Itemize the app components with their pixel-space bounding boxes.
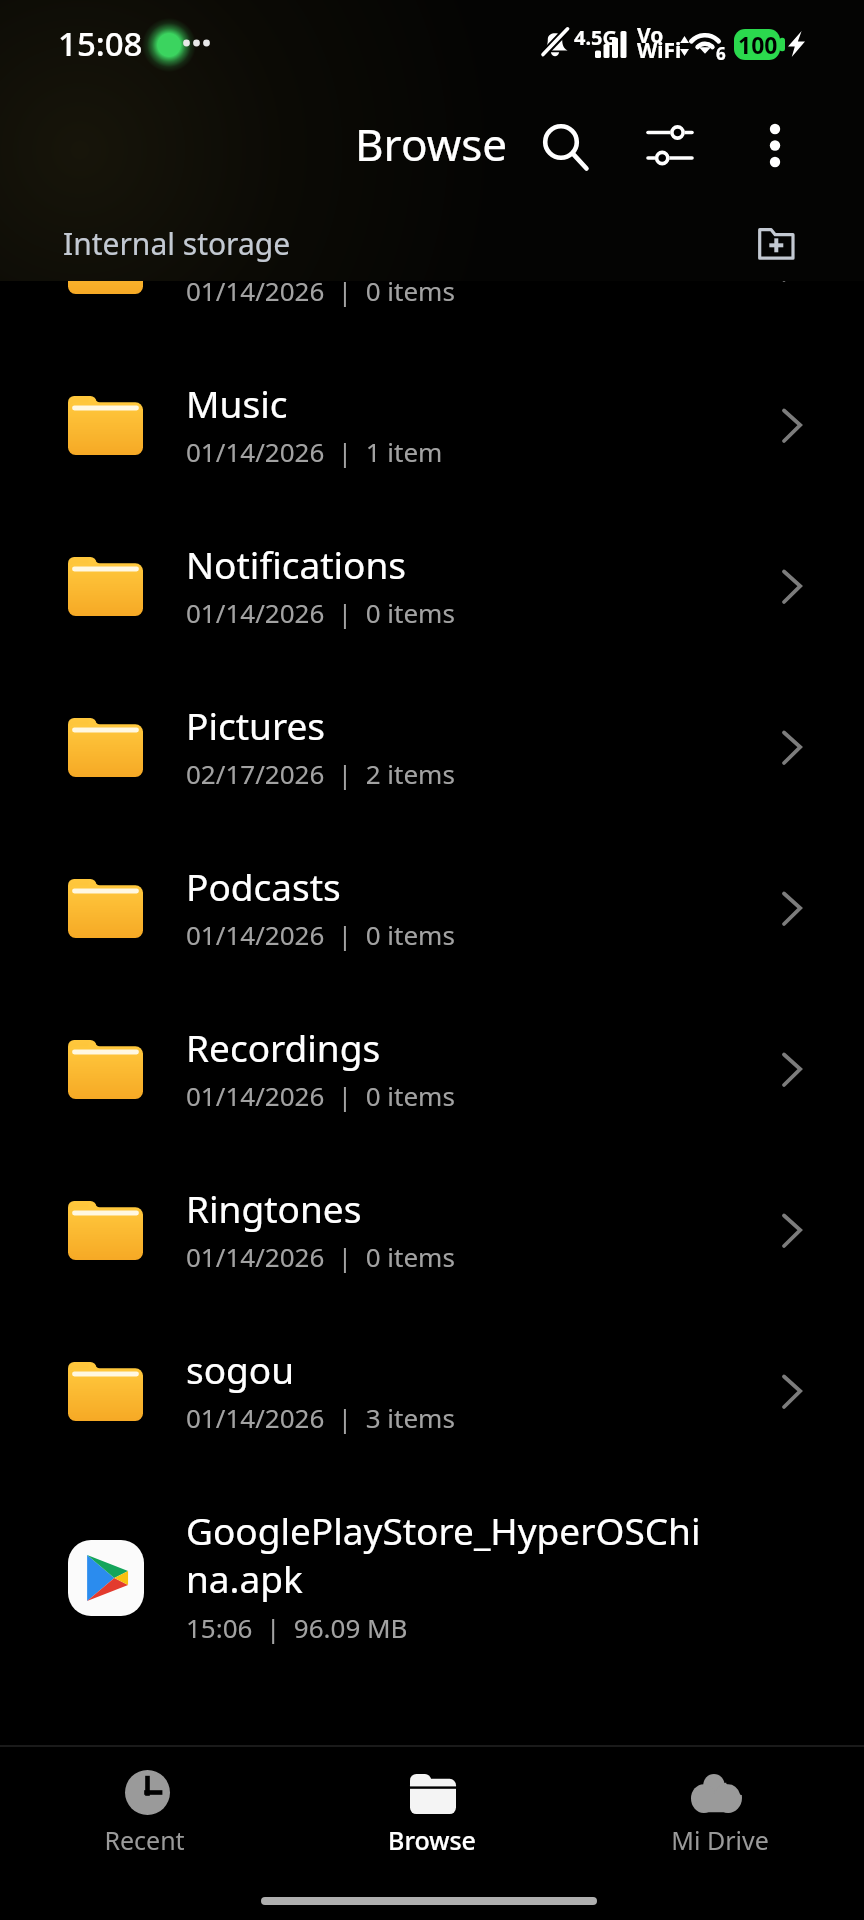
- button[interactable]: Podcasts: [0, 828, 864, 989]
- staticText: Browse: [355, 114, 508, 174]
- staticText: Podcasts: [186, 861, 341, 911]
- button[interactable]: Notifications: [0, 506, 864, 667]
- staticText: 01/14/2026 | 1 item: [186, 434, 443, 469]
- button[interactable]: Mi Drive: [576, 1747, 864, 1871]
- staticText: 01/14/2026 | 0 items: [186, 595, 455, 630]
- button[interactable]: sogou: [0, 1311, 864, 1472]
- button[interactable]: Recent: [0, 1747, 288, 1871]
- staticText: 02/17/2026 | 2 items: [186, 756, 455, 791]
- button[interactable]: GooglePlayStore_HyperOSChina.apk: [0, 1472, 864, 1672]
- button[interactable]: Movies: [0, 184, 864, 345]
- button[interactable]: Internal storage: [63, 223, 291, 264]
- button[interactable]: New folder: [744, 214, 808, 278]
- staticText: WiFi: [637, 36, 682, 65]
- staticText: Internal storage: [63, 223, 291, 264]
- staticText: 100: [738, 29, 778, 60]
- staticText: 01/14/2026 | 0 items: [186, 917, 455, 952]
- staticText: 01/14/2026 | 0 items: [186, 1239, 455, 1274]
- staticText: Mi Drive: [671, 1823, 769, 1857]
- button[interactable]: Pictures: [0, 667, 864, 828]
- staticText: Ringtones: [186, 1183, 362, 1233]
- staticText: Pictures: [186, 700, 326, 750]
- staticText: 01/14/2026 | 3 items: [186, 1400, 455, 1435]
- staticText: 6: [716, 42, 726, 65]
- button[interactable]: Music: [0, 345, 864, 506]
- button[interactable]: Browse: [288, 1747, 576, 1871]
- staticText: Recordings: [186, 1022, 381, 1072]
- button[interactable]: Sort and filter: [640, 106, 700, 166]
- staticText: Recent: [104, 1823, 185, 1857]
- staticText: 01/14/2026 | 0 items: [186, 273, 455, 308]
- staticText: sogou: [186, 1344, 295, 1394]
- button[interactable]: Recordings: [0, 989, 864, 1150]
- staticText: Notifications: [186, 539, 407, 589]
- staticText: GooglePlayStore_HyperOSChina.apk: [186, 1505, 719, 1604]
- staticText: 01/14/2026 | 0 items: [186, 1078, 455, 1113]
- staticText: 4.5G: [574, 24, 617, 51]
- staticText: 15:06 | 96.09 MB: [186, 1610, 408, 1645]
- staticText: Movies: [186, 217, 309, 267]
- staticText: 15:08: [58, 21, 143, 66]
- button[interactable]: Browse: [355, 114, 508, 174]
- button[interactable]: Search: [525, 106, 597, 178]
- staticText: Vo: [637, 21, 664, 50]
- button[interactable]: More options: [751, 106, 799, 178]
- staticText: Music: [186, 378, 288, 428]
- button[interactable]: Ringtones: [0, 1150, 864, 1311]
- staticText: Browse: [388, 1823, 476, 1857]
